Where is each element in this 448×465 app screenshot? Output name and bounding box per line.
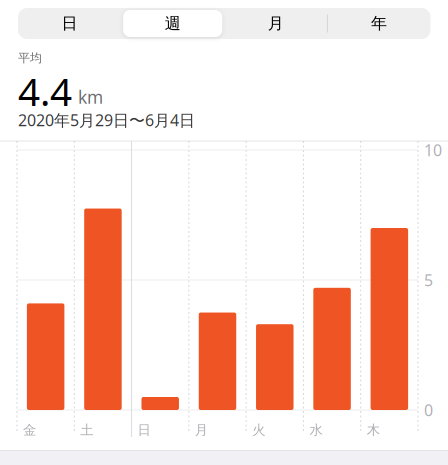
staticText: 10	[424, 139, 442, 161]
staticText: 月	[195, 422, 208, 438]
button[interactable]: 週	[121, 8, 224, 39]
button[interactable]: 年	[327, 8, 430, 39]
staticText: 土	[80, 422, 93, 438]
staticText: 週	[165, 14, 181, 33]
staticText: 0	[424, 399, 433, 421]
staticText: 日	[138, 422, 151, 438]
staticText: 金	[23, 422, 36, 438]
staticText: 2020年5月29日〜6月4日	[18, 109, 195, 131]
staticText: 日	[62, 14, 78, 33]
staticText: 平均	[18, 51, 42, 65]
staticText: 月	[268, 14, 284, 33]
staticText: 4.4	[18, 65, 72, 117]
staticText: 年	[371, 14, 387, 33]
staticText: 火	[252, 422, 265, 438]
staticText: 5	[424, 269, 433, 291]
staticText: km	[78, 85, 103, 108]
staticText: 木	[367, 422, 380, 438]
button[interactable]: 日	[18, 8, 121, 39]
button[interactable]: 月	[224, 8, 327, 39]
staticText: 水	[309, 422, 322, 438]
